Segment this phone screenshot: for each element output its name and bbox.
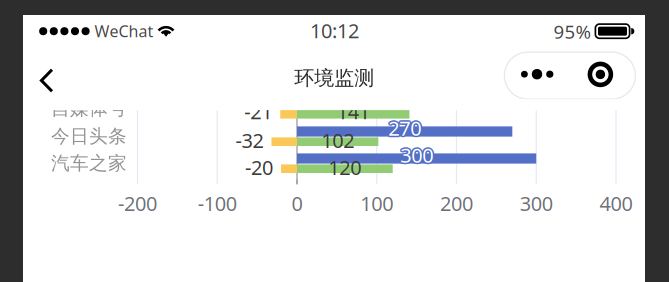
staticText: 270: [389, 116, 422, 142]
staticText: 270: [387, 116, 420, 142]
staticText: 自媒体号: [51, 97, 127, 120]
staticText: -100: [198, 190, 237, 217]
staticText: 300: [401, 143, 434, 169]
staticText: WeChat: [94, 20, 153, 42]
staticText: 270: [389, 114, 422, 140]
staticText: 95%: [554, 19, 592, 44]
staticText: 10:12: [310, 17, 359, 44]
staticText: 270: [388, 113, 421, 140]
staticText: 102: [321, 127, 354, 153]
staticText: 400: [599, 190, 632, 217]
staticText: 300: [399, 143, 432, 169]
staticText: 300: [400, 143, 433, 170]
staticText: 270: [387, 115, 420, 141]
staticText: 环境监测: [294, 66, 374, 90]
staticText: 300: [402, 142, 435, 168]
staticText: 汽车之家: [51, 152, 127, 175]
staticText: 100: [360, 190, 393, 217]
button[interactable]: Back: [23, 57, 69, 103]
staticText: 300: [400, 140, 433, 167]
staticText: 300: [400, 142, 433, 168]
staticText: 270: [388, 116, 421, 143]
staticText: 141: [337, 98, 370, 125]
staticText: 270: [387, 114, 420, 140]
staticText: 120: [328, 154, 361, 180]
staticText: -20: [245, 154, 273, 180]
staticText: -21: [244, 98, 272, 125]
staticText: 300: [520, 190, 553, 217]
staticText: -32: [235, 127, 263, 153]
staticText: 200: [440, 190, 473, 217]
staticText: 300: [399, 142, 432, 168]
staticText: 300: [401, 141, 434, 167]
staticText: 270: [390, 115, 423, 141]
staticText: 300: [399, 141, 432, 167]
staticText: -200: [118, 190, 157, 217]
staticText: 270: [388, 115, 421, 141]
staticText: 0: [291, 190, 302, 217]
staticText: 今日头条: [51, 125, 127, 148]
button[interactable]: Close: [569, 51, 631, 98]
button[interactable]: More: [506, 51, 568, 98]
